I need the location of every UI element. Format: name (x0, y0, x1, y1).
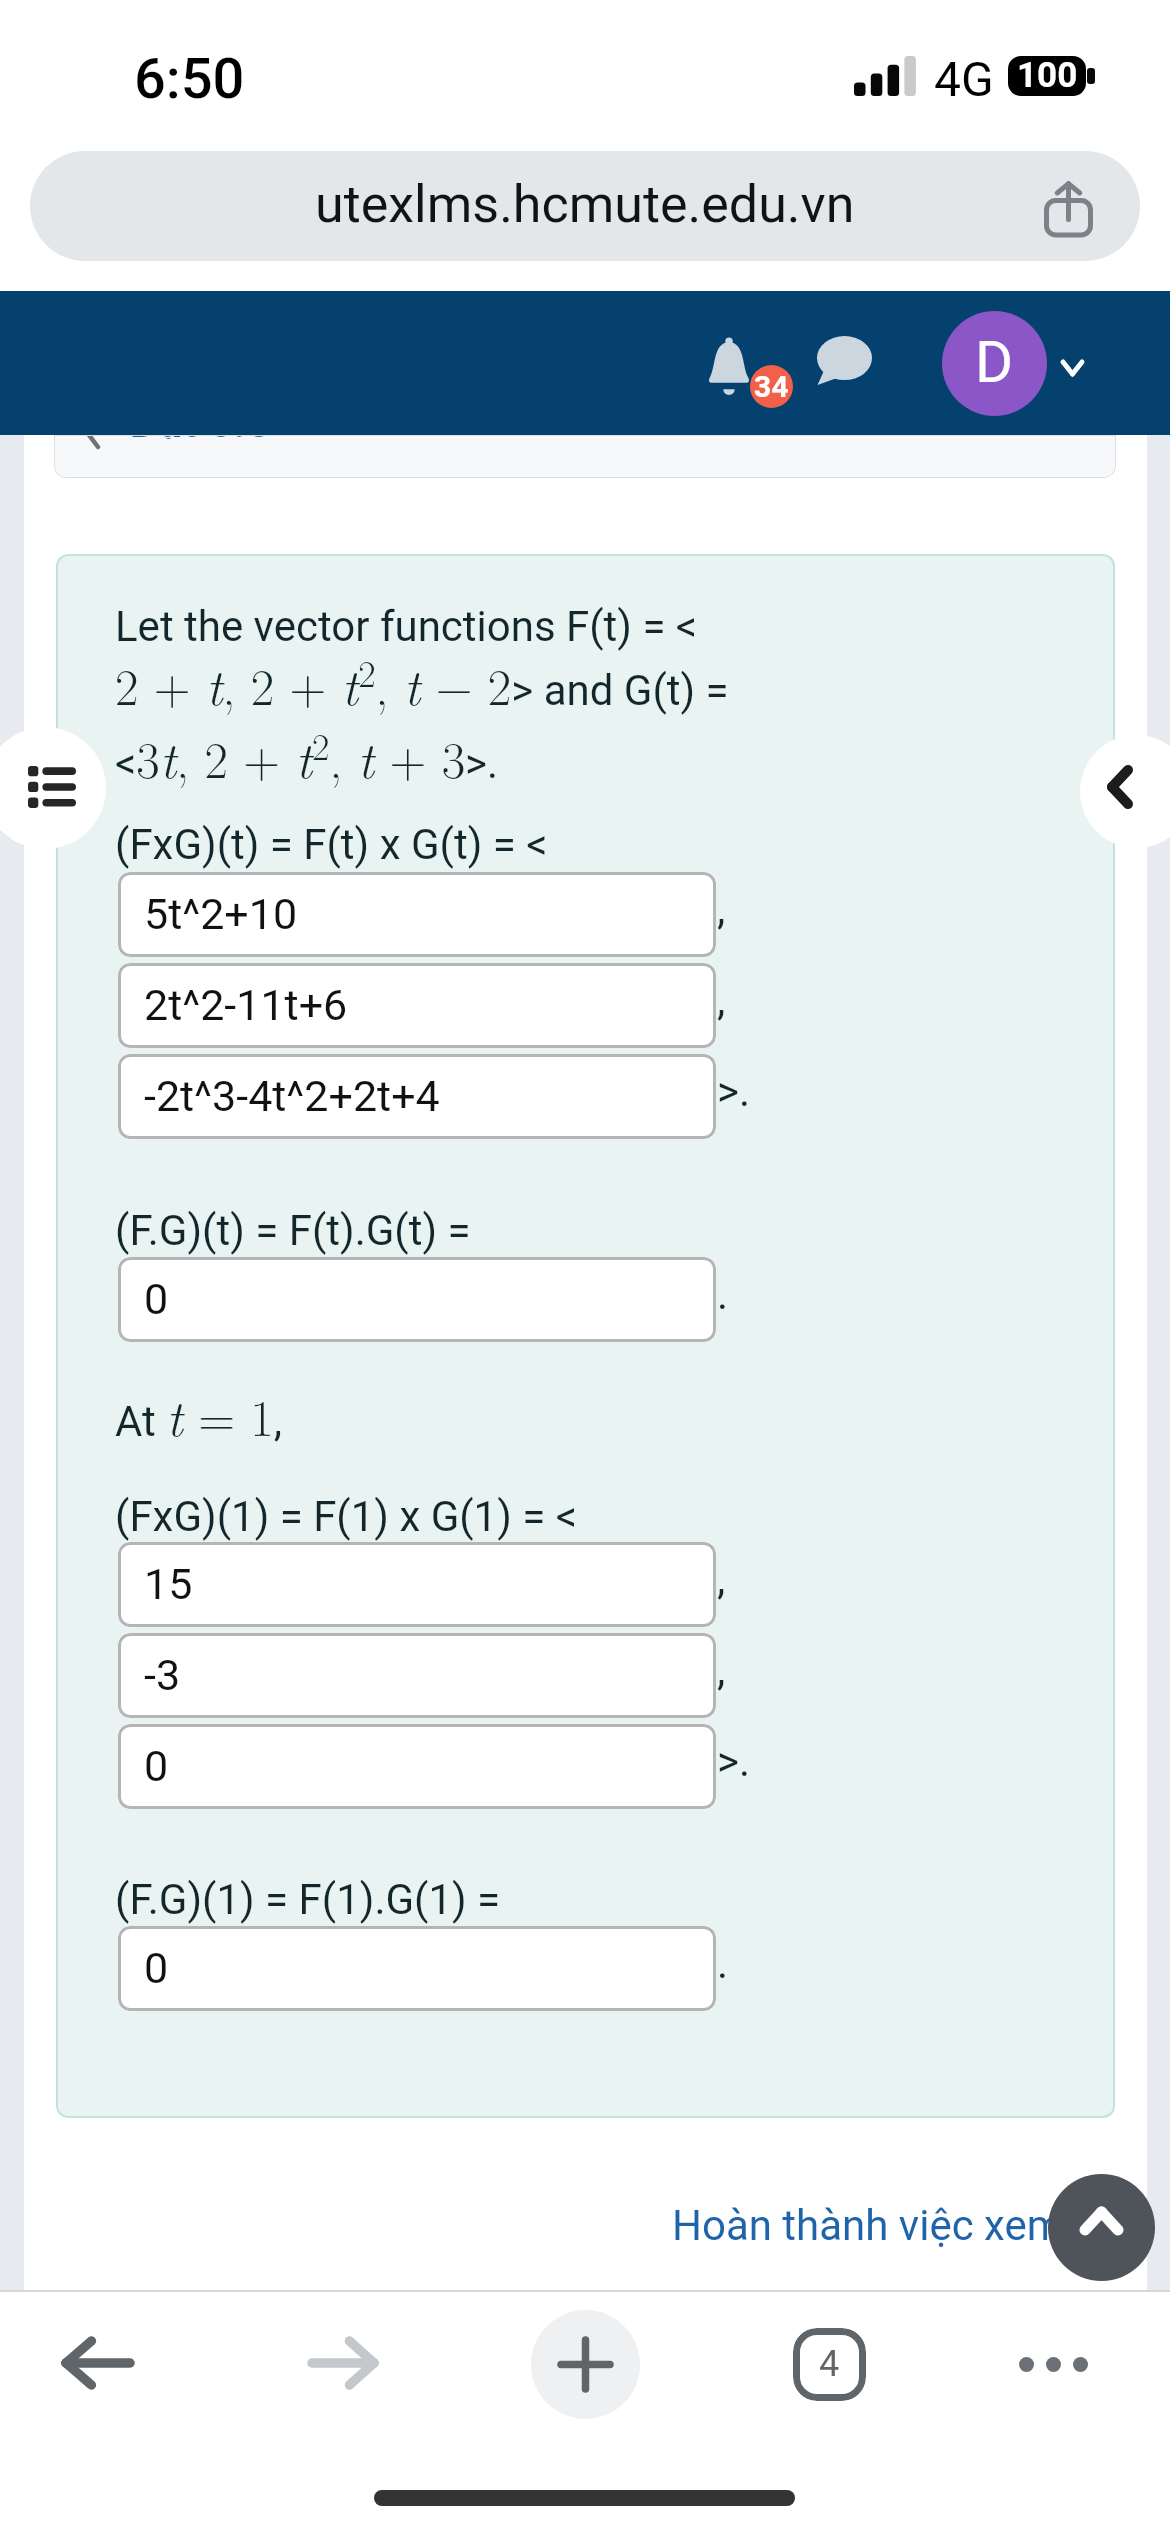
button[interactable]: 15 (118, 1542, 716, 1627)
button[interactable]: Question list (0, 727, 106, 849)
staticText: 2 + t, 2 + t2, t − 2> and G(t) = (115, 644, 729, 720)
staticText: 0 (144, 1943, 169, 1993)
staticText: 100 (1017, 56, 1078, 95)
button[interactable]: D (942, 311, 1047, 416)
staticText: At t = 1, (115, 1379, 282, 1451)
button[interactable]: 0 (118, 1257, 716, 1342)
staticText: , (717, 976, 726, 1025)
staticText: <3t, 2 + t2, t + 3>. (115, 717, 499, 793)
staticText: (F.G)(1) = F(1).G(1) = (115, 1875, 501, 1924)
button[interactable]: 0 (118, 1926, 716, 2011)
button[interactable]: Scroll to top (1048, 2174, 1155, 2281)
button[interactable]: Previous section (54, 435, 1116, 478)
staticText: 4 (819, 2343, 840, 2385)
staticText: , (717, 885, 726, 934)
staticText: (F.G)(t) = F(t).G(t) = (115, 1206, 471, 1255)
staticText: (FxG)(t) = F(t) x G(t) = < (115, 820, 548, 869)
staticText: >. (717, 1067, 751, 1116)
staticText: Đạt 6.5 (129, 435, 271, 439)
button[interactable]: Notifications (690, 320, 800, 415)
button[interactable]: Account menu (1042, 337, 1104, 399)
button[interactable]: -2t^3-4t^2+2t+4 (118, 1054, 716, 1139)
staticText: 4G (934, 51, 994, 107)
staticText: (FxG)(1) = F(1) x G(1) = < (115, 1492, 578, 1541)
button[interactable]: Messages (800, 326, 884, 394)
button[interactable]: 5t^2+10 (118, 872, 716, 957)
staticText: -3 (144, 1650, 181, 1700)
button[interactable]: 0 (118, 1724, 716, 1809)
button[interactable]: Hoàn thành việc xem (672, 2201, 1064, 2250)
button[interactable]: 2t^2-11t+6 (118, 963, 716, 1048)
staticText: . (717, 1270, 729, 1319)
button[interactable]: utexlms.hcmute.edu.vn (30, 151, 1140, 261)
staticText: >. (717, 1737, 751, 1786)
button[interactable]: -3 (118, 1633, 716, 1718)
staticText: D (975, 328, 1014, 396)
staticText: 5t^2+10 (144, 889, 298, 939)
staticText: . (717, 1939, 729, 1988)
staticText: 0 (144, 1741, 169, 1791)
button[interactable]: Share (1026, 162, 1114, 250)
staticText: 34 (754, 369, 789, 404)
staticText: 0 (144, 1274, 169, 1324)
staticText: 2t^2-11t+6 (144, 980, 348, 1030)
button[interactable]: More (988, 2299, 1118, 2429)
button[interactable]: Forward (275, 2298, 405, 2428)
staticText: 6:50 (134, 46, 245, 112)
staticText: , (717, 1555, 726, 1604)
button[interactable]: New tab (531, 2310, 640, 2419)
button[interactable]: Previous question (1080, 735, 1170, 848)
staticText: 15 (144, 1559, 193, 1609)
staticText: -2t^3-4t^2+2t+4 (144, 1071, 440, 1121)
staticText: Let the vector functions F(t) = < (115, 602, 698, 651)
button[interactable]: Back (30, 2298, 160, 2428)
staticText: , (717, 1646, 726, 1695)
button[interactable]: Tabs (759, 2294, 899, 2434)
staticText: utexlms.hcmute.edu.vn (315, 174, 855, 235)
